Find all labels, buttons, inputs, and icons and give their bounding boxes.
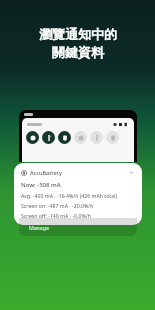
button[interactable]: Quick setting 2	[42, 131, 55, 144]
button[interactable]: Quick setting 5	[90, 131, 103, 144]
button[interactable]: Quick setting 6	[106, 131, 119, 144]
button[interactable]: Quick setting 4	[74, 131, 87, 144]
button[interactable]: Expand	[128, 169, 135, 176]
staticText: Manage	[29, 224, 49, 231]
button[interactable]: Manage	[19, 218, 137, 236]
button[interactable]: Quick setting 1	[26, 131, 39, 144]
button[interactable]: Quick setting 3	[58, 131, 71, 144]
staticText: Screen off: -140 mA · -0.0%/h	[21, 212, 91, 219]
staticText: Screen on: -487 mA · -20.0%/h	[21, 202, 94, 209]
staticText: AccuBattery	[30, 169, 62, 176]
staticText: Now: -508 mA	[21, 181, 61, 189]
staticText: 關鍵資料	[52, 44, 104, 60]
staticText: 瀏覽通知中的	[39, 26, 117, 42]
button[interactable]: AccuBattery	[14, 163, 142, 225]
staticText: Avg: -400 mA · -16.4%/h (426 mAh total)	[21, 192, 118, 199]
